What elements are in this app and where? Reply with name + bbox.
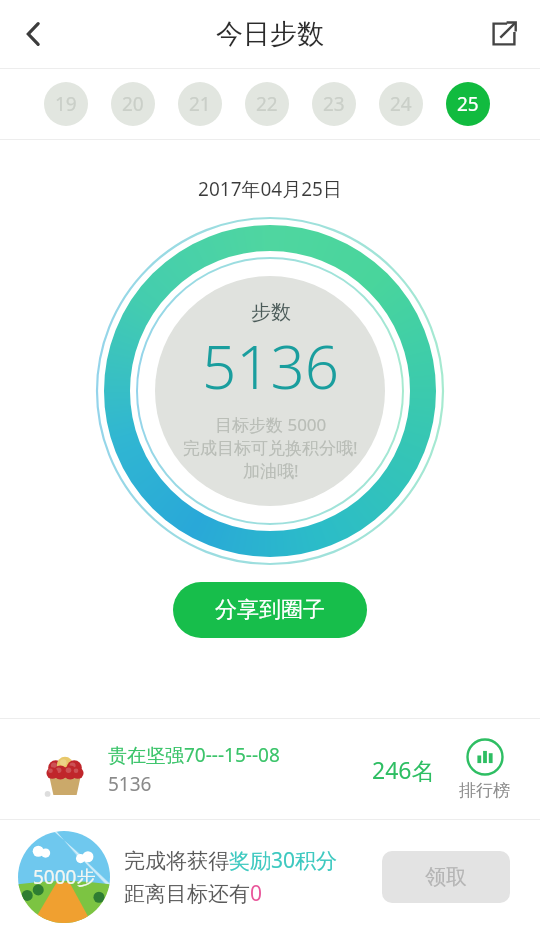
- button[interactable]: 20: [111, 82, 155, 126]
- staticText: 20: [122, 91, 144, 117]
- staticText: 步数: [251, 300, 291, 325]
- button[interactable]: Back: [6, 6, 62, 62]
- staticText: 22: [256, 91, 278, 117]
- staticText: 完成将获得奖励30积分: [124, 846, 338, 875]
- staticText: 5136: [202, 325, 340, 407]
- button[interactable]: 贵在坚强70---15--08: [0, 719, 540, 819]
- staticText: 完成目标可兑换积分哦!: [183, 436, 358, 459]
- button[interactable]: 分享到圈子: [173, 582, 367, 638]
- staticText: 19: [55, 91, 77, 117]
- staticText: 今日步数: [216, 17, 324, 51]
- staticText: 贵在坚强70---15--08: [108, 742, 280, 768]
- staticText: 排行榜: [459, 780, 510, 801]
- button[interactable]: 21: [178, 82, 222, 126]
- staticText: 23: [323, 91, 345, 117]
- staticText: 25: [457, 91, 479, 117]
- button[interactable]: 19: [44, 82, 88, 126]
- button[interactable]: 25: [446, 82, 490, 126]
- staticText: 加油哦!: [243, 459, 299, 482]
- staticText: 24: [390, 91, 412, 117]
- staticText: 目标步数 5000: [215, 413, 327, 436]
- staticText: 分享到圈子: [215, 596, 325, 624]
- button[interactable]: Share: [478, 8, 530, 60]
- button[interactable]: 22: [245, 82, 289, 126]
- button[interactable]: 23: [312, 82, 356, 126]
- staticText: 5000步: [33, 864, 96, 890]
- staticText: 5136: [108, 771, 152, 797]
- button[interactable]: 24: [379, 82, 423, 126]
- staticText: 领取: [425, 864, 467, 890]
- staticText: 2017年04月25日: [0, 176, 540, 202]
- staticText: 距离目标还有0: [124, 879, 263, 908]
- staticText: 21: [189, 91, 211, 117]
- staticText: 246名: [372, 754, 435, 785]
- button[interactable]: 领取: [382, 851, 510, 903]
